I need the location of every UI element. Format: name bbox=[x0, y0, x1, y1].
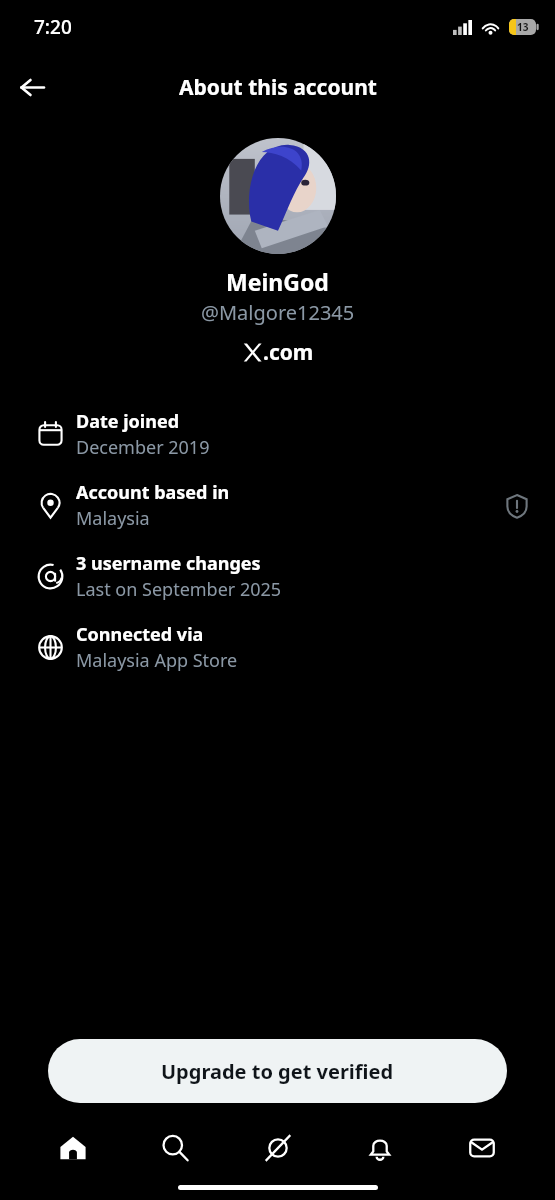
button[interactable]: Messages bbox=[453, 1121, 511, 1175]
staticText: Date joined bbox=[76, 409, 180, 434]
button[interactable]: Profile photo bbox=[220, 138, 336, 254]
button[interactable]: More information bbox=[497, 486, 537, 526]
button[interactable]: Account based in bbox=[0, 470, 555, 541]
button[interactable]: Grok bbox=[249, 1121, 307, 1175]
staticText: Upgrade to get verified bbox=[161, 1058, 394, 1085]
button[interactable]: Date joined bbox=[0, 399, 555, 470]
staticText: 3 username changes bbox=[76, 551, 261, 576]
staticText: Connected via bbox=[76, 622, 204, 647]
staticText: 13 bbox=[517, 20, 529, 34]
button[interactable]: Notifications bbox=[351, 1121, 409, 1175]
staticText: Account based in bbox=[76, 480, 230, 505]
button[interactable]: Connected via bbox=[0, 612, 555, 683]
button[interactable]: Home bbox=[44, 1121, 102, 1175]
staticText: 7:20 bbox=[34, 14, 72, 40]
staticText: .com bbox=[263, 338, 314, 367]
button[interactable]: 3 username changes bbox=[0, 541, 555, 612]
button[interactable]: Search bbox=[146, 1121, 204, 1175]
staticText: Malaysia bbox=[76, 506, 150, 531]
button[interactable]: .com bbox=[239, 336, 317, 369]
button[interactable]: Back bbox=[8, 63, 56, 111]
staticText: Malaysia App Store bbox=[76, 648, 238, 673]
staticText: About this account bbox=[179, 73, 377, 102]
staticText: MeinGod bbox=[226, 266, 329, 297]
button[interactable]: Upgrade to get verified bbox=[48, 1039, 507, 1103]
staticText: @Malgore12345 bbox=[201, 299, 355, 326]
staticText: December 2019 bbox=[76, 435, 210, 460]
staticText: Last on September 2025 bbox=[76, 577, 282, 602]
